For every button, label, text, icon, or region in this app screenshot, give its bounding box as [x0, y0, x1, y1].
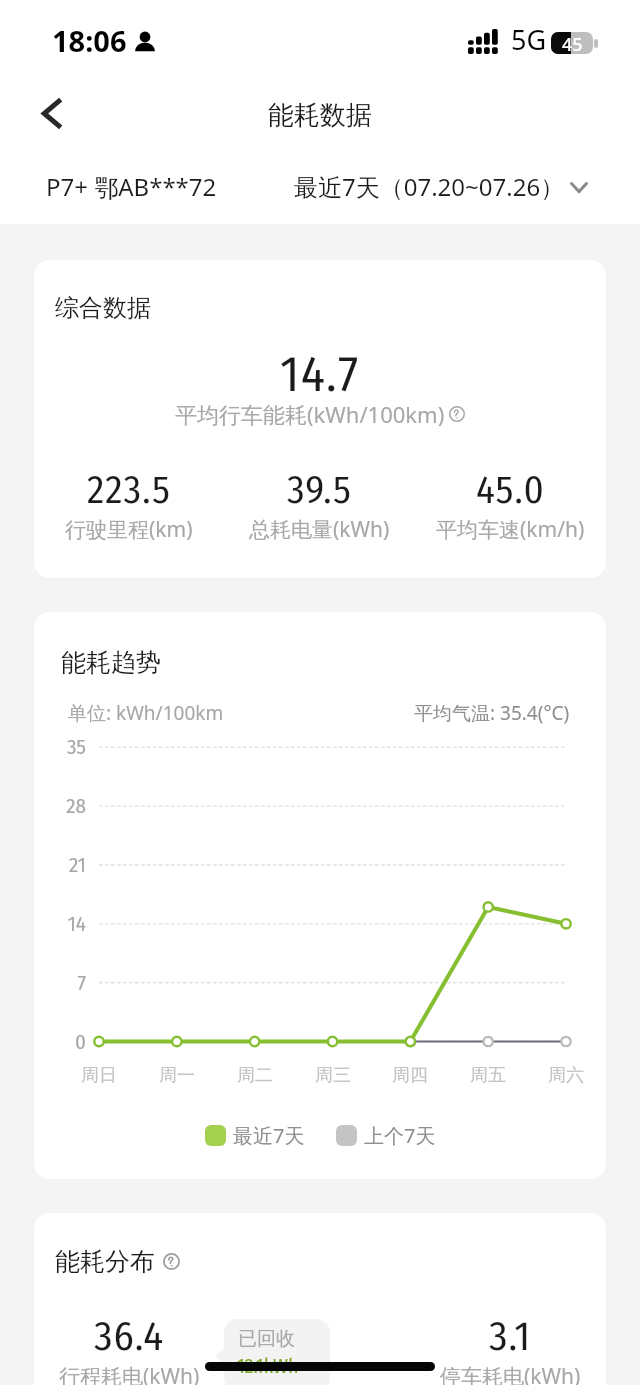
staticText: 28 — [34, 793, 86, 818]
staticText: 平均车速(km/h) — [436, 515, 585, 544]
staticText: 39.5 — [287, 467, 352, 514]
staticText: 周五 — [458, 1064, 518, 1087]
staticText: 3.1 — [489, 1312, 532, 1361]
staticText: 周三 — [303, 1064, 363, 1087]
staticText: 能耗数据 — [268, 99, 372, 132]
staticText: 停车耗电(kWh) — [440, 1362, 581, 1385]
staticText: 45.0 — [476, 467, 545, 514]
staticText: 最近7天 — [233, 1122, 305, 1149]
staticText: 周六 — [536, 1064, 596, 1087]
staticText: 周二 — [225, 1064, 285, 1087]
staticText: 综合数据 — [55, 293, 151, 323]
staticText: 5G — [511, 21, 547, 58]
staticText: 平均气温: 35.4(°C) — [414, 700, 570, 726]
staticText: 能耗趋势 — [61, 647, 161, 678]
staticText: 7 — [34, 970, 86, 995]
staticText: 35 — [34, 734, 86, 759]
button[interactable]: 最近7天（07.20~07.26） — [290, 160, 600, 224]
staticText: 行程耗电(kWh) — [59, 1362, 200, 1385]
staticText: 14 — [34, 911, 86, 936]
button[interactable]: Back — [21, 86, 81, 146]
staticText: P7+ 鄂AB***72 — [46, 170, 217, 203]
staticText: 最近7天（07.20~07.26） — [294, 170, 565, 203]
staticText: 36.4 — [94, 1312, 165, 1361]
staticText: 14.7 — [280, 344, 360, 404]
staticText: 0 — [34, 1029, 86, 1054]
staticText: 行驶里程(km) — [65, 515, 193, 544]
staticText: 上个7天 — [364, 1122, 436, 1149]
staticText: 21 — [34, 852, 86, 877]
staticText: 12.1kWh — [237, 1354, 299, 1378]
staticText: 18:06 — [52, 21, 127, 60]
staticText: 已回收 — [238, 1327, 295, 1351]
staticText: 周四 — [380, 1064, 440, 1087]
staticText: 223.5 — [87, 467, 171, 514]
staticText: 能耗分布 — [55, 1246, 155, 1277]
staticText: 周一 — [147, 1064, 207, 1087]
staticText: 平均行车能耗(kWh/100km) — [175, 399, 445, 429]
staticText: 总耗电量(kWh) — [249, 515, 390, 544]
staticText: 45 — [562, 32, 583, 54]
staticText: 单位: kWh/100km — [68, 700, 224, 726]
staticText: 周日 — [69, 1064, 129, 1087]
